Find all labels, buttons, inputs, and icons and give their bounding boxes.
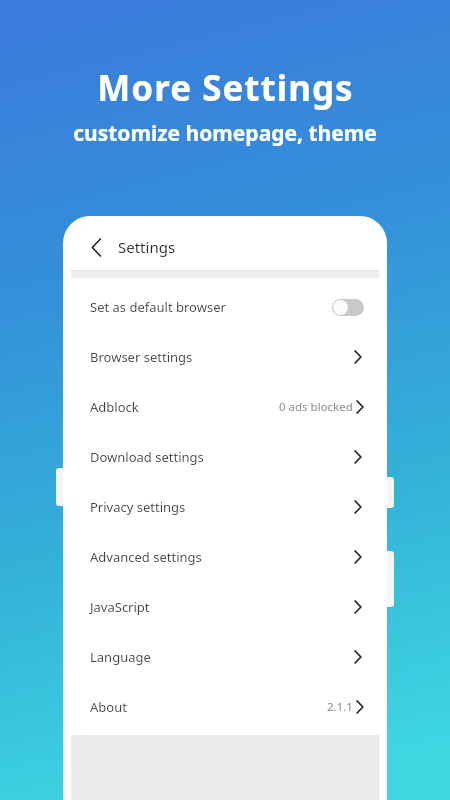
- button[interactable]: Download settings: [71, 432, 379, 482]
- staticText: Set as default browser: [90, 298, 226, 316]
- button[interactable]: Advanced settings: [71, 532, 379, 582]
- button[interactable]: Back: [82, 233, 110, 261]
- staticText: 0 ads blocked: [279, 399, 353, 415]
- button[interactable]: Browser settings: [71, 332, 379, 382]
- staticText: More Settings: [97, 64, 354, 112]
- button[interactable]: JavaScript: [71, 582, 379, 632]
- staticText: Browser settings: [90, 348, 193, 366]
- button[interactable]: About: [71, 682, 379, 732]
- staticText: Advanced settings: [90, 548, 202, 566]
- staticText: 2.1.1: [327, 699, 353, 715]
- staticText: Privacy settings: [90, 498, 186, 516]
- staticText: Language: [90, 648, 151, 666]
- button[interactable]: Language: [71, 632, 379, 682]
- staticText: Adblock: [90, 398, 139, 416]
- staticText: About: [90, 698, 127, 716]
- button[interactable]: Set as default browser switch, off: [332, 299, 364, 316]
- staticText: customize homepage, theme: [73, 119, 377, 148]
- button[interactable]: Set as default browser: [71, 282, 379, 332]
- button[interactable]: Adblock: [71, 382, 379, 432]
- button[interactable]: Privacy settings: [71, 482, 379, 532]
- staticText: Download settings: [90, 448, 204, 466]
- staticText: Settings: [118, 237, 176, 257]
- staticText: JavaScript: [90, 598, 150, 616]
